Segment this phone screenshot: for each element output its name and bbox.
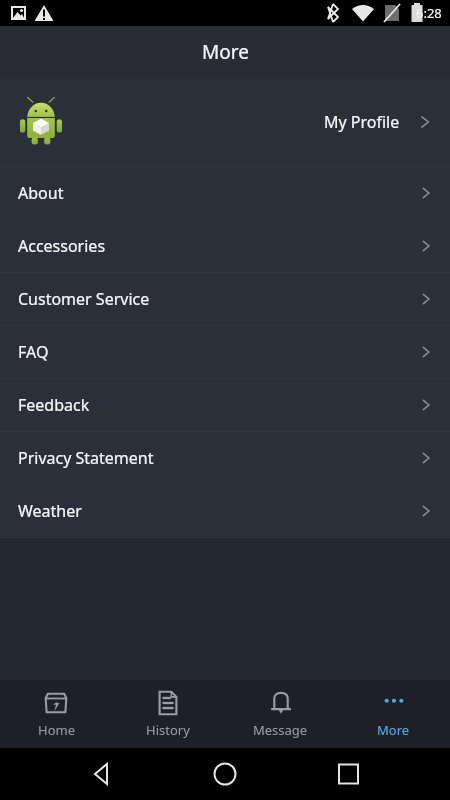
button[interactable]: Weather bbox=[0, 485, 450, 537]
button[interactable]: FAQ bbox=[0, 326, 450, 378]
staticText: Message bbox=[253, 721, 308, 739]
staticText: About bbox=[18, 182, 64, 204]
button[interactable]: Privacy Statement bbox=[0, 432, 450, 484]
button[interactable]: Profile avatar bbox=[0, 78, 450, 166]
button[interactable]: Home bbox=[0, 680, 112, 748]
staticText: 6:28 bbox=[416, 4, 442, 22]
staticText: Customer Service bbox=[18, 288, 150, 310]
staticText: Feedback bbox=[18, 394, 90, 416]
staticText: Home bbox=[38, 721, 75, 739]
button[interactable]: More bbox=[337, 680, 450, 748]
staticText: Weather bbox=[18, 500, 82, 522]
staticText: More bbox=[377, 721, 410, 739]
other: Profile avatar bbox=[18, 97, 64, 147]
staticText: Accessories bbox=[18, 235, 106, 257]
button[interactable]: Feedback bbox=[0, 379, 450, 431]
button[interactable]: Message bbox=[224, 680, 337, 748]
button[interactable]: Customer Service bbox=[0, 273, 450, 325]
button[interactable]: History bbox=[112, 680, 224, 748]
staticText: Privacy Statement bbox=[18, 447, 154, 469]
staticText: More bbox=[202, 39, 249, 65]
staticText: History bbox=[146, 721, 190, 739]
button[interactable]: Accessories bbox=[0, 220, 450, 272]
staticText: My Profile bbox=[324, 111, 400, 133]
staticText: FAQ bbox=[18, 341, 49, 363]
button[interactable]: About bbox=[0, 167, 450, 219]
